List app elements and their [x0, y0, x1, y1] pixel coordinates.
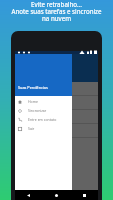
staticText: Entre em contato: [28, 117, 57, 122]
staticText: Home: [28, 99, 38, 104]
button[interactable]: Comprar pão: [15, 82, 98, 95]
staticText: Sair: [28, 126, 35, 131]
button[interactable]: Reunião equipe: [15, 124, 98, 137]
staticText: 12/05: [18, 117, 28, 122]
staticText: Evite retrabalho... Anote suas tarefas e…: [0, 0, 113, 23]
button[interactable]: Sincronizar: [15, 106, 72, 115]
button[interactable]: Back: [15, 190, 42, 200]
button[interactable]: Ligar para João: [15, 96, 98, 109]
button[interactable]: Pagar conta de luz: [15, 110, 98, 123]
staticText: Reunião equipe: [18, 126, 48, 131]
button[interactable]: Home: [15, 97, 72, 106]
staticText: Sincronizar: [28, 108, 47, 113]
staticText: Comprar pão: [18, 84, 43, 89]
staticText: Ligar para João: [18, 98, 47, 103]
staticText: Amanhã: [18, 103, 32, 108]
button[interactable]: Sair: [15, 124, 72, 133]
button[interactable]: Recent apps: [70, 190, 98, 200]
staticText: Pagar conta de luz: [18, 112, 53, 117]
button[interactable]: Home: [42, 190, 70, 200]
staticText: Suas Pendências: [18, 85, 48, 90]
button[interactable]: Entre em contato: [15, 115, 72, 124]
